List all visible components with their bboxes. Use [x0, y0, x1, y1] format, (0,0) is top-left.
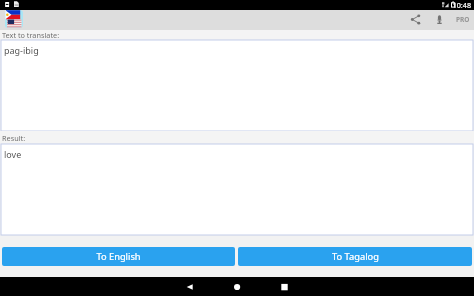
button[interactable]: Home [227, 277, 246, 296]
button[interactable]: Share [405, 9, 425, 29]
staticText: pag-ibig [4, 44, 39, 56]
staticText: To Tagalog [332, 250, 379, 263]
button[interactable]: PRO [450, 9, 474, 29]
button[interactable]: Voice input [429, 9, 449, 29]
staticText: love [4, 148, 22, 160]
button[interactable]: App logo [5, 10, 23, 28]
button[interactable]: Recent apps [275, 277, 294, 296]
staticText: To English [96, 250, 141, 263]
staticText: Result: [2, 133, 26, 143]
button[interactable]: pag-ibig [1, 40, 473, 131]
staticText: Text to translate: [2, 30, 60, 40]
staticText: PRO [456, 15, 470, 24]
staticText: 10:48 [0, 0, 471, 10]
button[interactable]: love [1, 144, 473, 235]
button[interactable]: To Tagalog [238, 247, 472, 266]
button[interactable]: To English [2, 247, 235, 266]
button[interactable]: Back [180, 277, 199, 296]
